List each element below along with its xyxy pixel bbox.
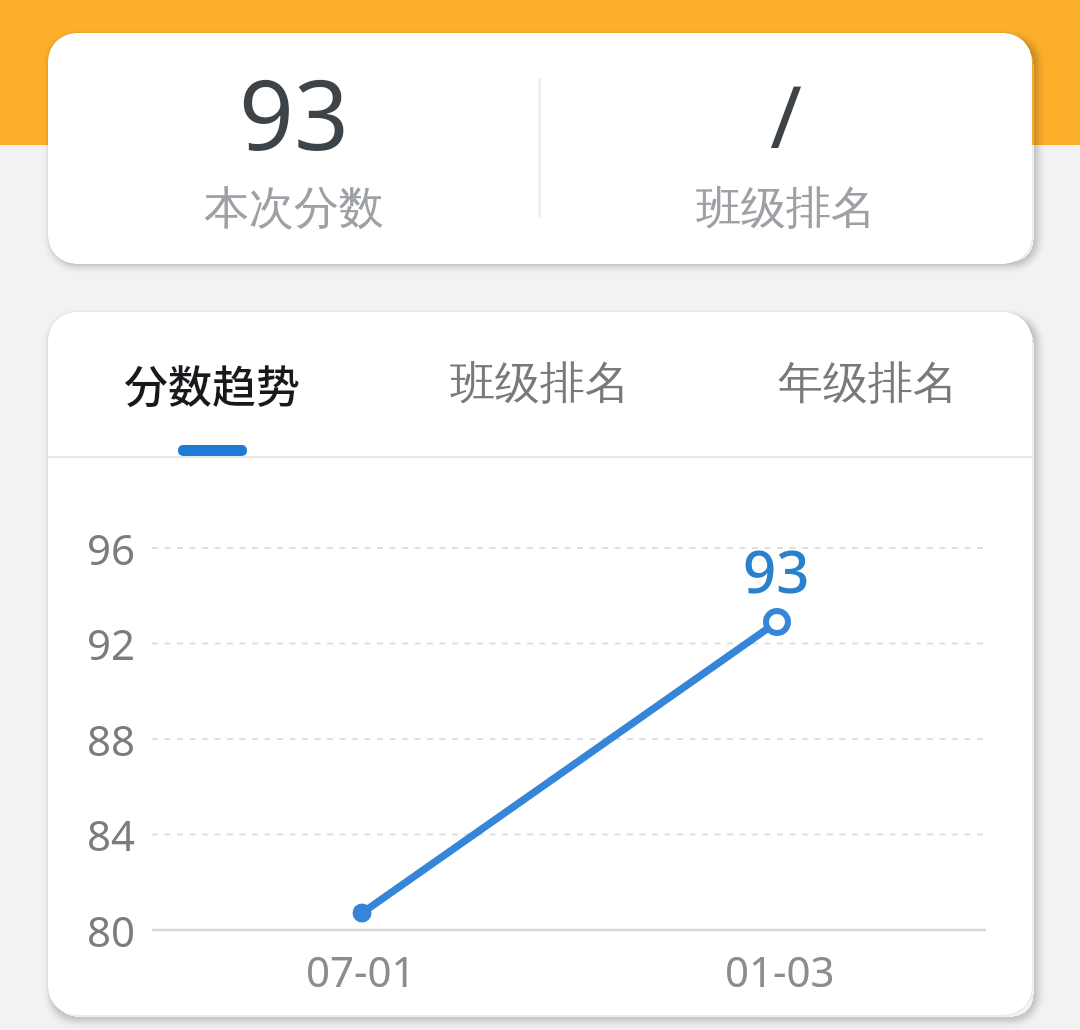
staticText: 88 (87, 711, 136, 768)
button[interactable] (48, 33, 1032, 264)
button[interactable]: 班级排名 (330, 303, 750, 463)
staticText: 93 (743, 531, 810, 610)
button[interactable]: 年级排名 (658, 303, 1078, 463)
staticText: 分数趋势 (124, 352, 300, 416)
staticText: 80 (87, 902, 136, 959)
staticText: 93 (239, 47, 349, 178)
staticText: 96 (87, 520, 136, 577)
staticText: 01-03 (725, 942, 835, 999)
staticText: / (770, 56, 802, 173)
staticText: 年级排名 (778, 355, 958, 412)
staticText: 班级排名 (696, 180, 876, 237)
button[interactable]: 分数趋势 (2, 304, 422, 464)
staticText: 84 (87, 806, 136, 863)
staticText: 班级排名 (450, 355, 630, 412)
staticText: 本次分数 (204, 180, 384, 237)
staticText: 07-01 (306, 942, 416, 999)
staticText: 92 (87, 615, 136, 672)
